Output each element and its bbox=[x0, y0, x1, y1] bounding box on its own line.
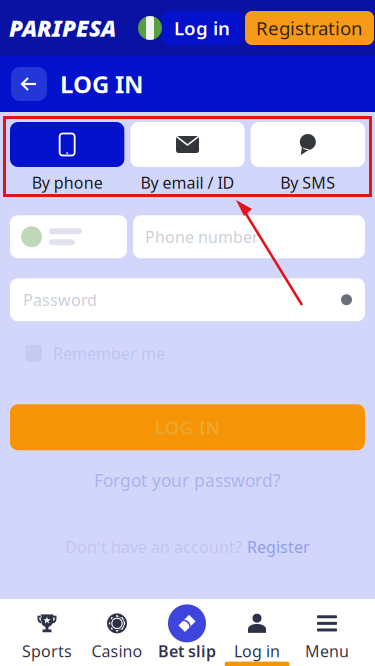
staticText: Registration bbox=[256, 16, 363, 40]
staticText: Bet slip bbox=[158, 640, 216, 662]
staticText: By SMS bbox=[280, 172, 335, 193]
button[interactable]: Forgot your password? bbox=[0, 471, 375, 489]
button[interactable]: Menu bbox=[292, 599, 362, 666]
staticText: Sports bbox=[22, 640, 72, 662]
button[interactable]: Log in bbox=[222, 599, 292, 666]
staticText: Forgot your password? bbox=[94, 469, 281, 492]
staticText: PARIPESA bbox=[9, 13, 116, 43]
button[interactable]: Remember me bbox=[0, 343, 375, 363]
button[interactable]: Bet slip bbox=[152, 599, 222, 666]
staticText: Password bbox=[23, 289, 97, 310]
staticText: Register bbox=[247, 536, 310, 557]
button[interactable]: Register bbox=[247, 536, 310, 557]
staticText: Don't have an account? bbox=[65, 536, 242, 557]
staticText: Log in bbox=[234, 640, 280, 662]
staticText: Casino bbox=[91, 640, 142, 662]
button[interactable]: Back bbox=[11, 67, 47, 101]
staticText: Phone number bbox=[145, 226, 259, 247]
button[interactable]: Log in bbox=[162, 11, 242, 45]
button[interactable]: By SMS bbox=[251, 122, 365, 193]
button[interactable]: Registration bbox=[245, 11, 374, 45]
button[interactable]: Casino bbox=[82, 599, 152, 666]
staticText: Log in bbox=[174, 16, 230, 40]
staticText: By phone bbox=[32, 172, 103, 193]
button[interactable]: LOG IN bbox=[10, 404, 365, 450]
staticText: LOG IN bbox=[60, 68, 144, 100]
staticText: LOG IN bbox=[154, 415, 220, 440]
staticText: Menu bbox=[305, 640, 349, 662]
button[interactable]: By phone bbox=[10, 122, 124, 193]
staticText: By email / ID bbox=[140, 172, 234, 193]
button[interactable]: By email / ID bbox=[130, 122, 245, 193]
staticText: Remember me bbox=[53, 343, 165, 364]
button[interactable]: Sports bbox=[12, 599, 82, 666]
